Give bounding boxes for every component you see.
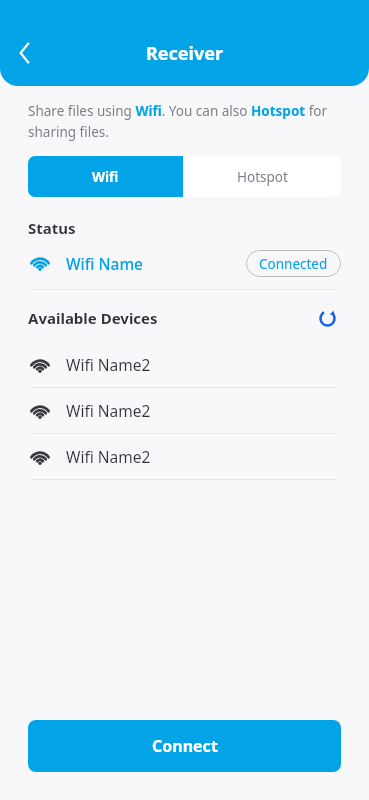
button[interactable]: Wifi Name2 xyxy=(0,388,369,433)
button[interactable]: Back xyxy=(8,36,42,70)
staticText: Connect xyxy=(152,735,218,757)
button[interactable]: Connected xyxy=(246,250,341,277)
staticText: Status xyxy=(28,218,76,238)
button[interactable]: Wifi Name xyxy=(28,246,341,280)
button[interactable]: Hotspot xyxy=(183,156,341,197)
staticText: Hotspot xyxy=(237,168,288,186)
staticText: Wifi xyxy=(92,168,119,186)
staticText: Share files using Wifi. You can also Hot… xyxy=(28,102,341,141)
staticText: Wifi Name xyxy=(66,253,143,274)
staticText: Wifi Name2 xyxy=(66,354,151,375)
staticText: Wifi Name2 xyxy=(66,446,151,467)
button[interactable]: Wifi Name2 xyxy=(0,342,369,387)
staticText: Wifi Name2 xyxy=(66,400,151,421)
button[interactable]: Refresh xyxy=(313,304,341,332)
button[interactable]: Wifi xyxy=(28,156,183,197)
button[interactable]: Wifi Name2 xyxy=(0,434,369,479)
staticText: Available Devices xyxy=(28,308,158,328)
staticText: Receiver xyxy=(146,41,224,66)
button[interactable]: Connect xyxy=(28,720,341,772)
staticText: Connected xyxy=(259,255,328,273)
